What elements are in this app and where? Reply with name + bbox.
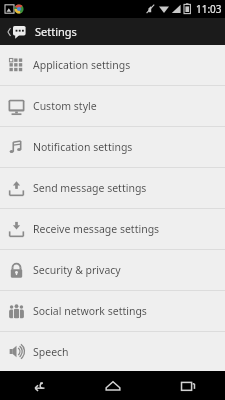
staticText: Custom style <box>33 99 97 113</box>
staticText: Application settings <box>33 58 131 72</box>
button[interactable]: Custom style <box>0 86 225 127</box>
button[interactable]: Home <box>75 371 150 400</box>
button[interactable]: Up, Settings <box>0 18 225 45</box>
button[interactable]: Speech <box>0 332 225 371</box>
staticText: Settings <box>35 24 77 39</box>
staticText: Social network settings <box>33 304 147 318</box>
button[interactable]: Application settings <box>0 45 225 86</box>
button[interactable]: Security & privacy <box>0 250 225 291</box>
button[interactable]: Back <box>0 371 75 400</box>
staticText: 11:03 <box>196 2 222 16</box>
button[interactable]: Recent apps <box>150 371 225 400</box>
button[interactable]: Notification settings <box>0 127 225 168</box>
staticText: Receive message settings <box>33 222 160 236</box>
staticText: Send message settings <box>33 181 147 195</box>
button[interactable]: Send message settings <box>0 168 225 209</box>
staticText: Speech <box>33 345 69 359</box>
staticText: Security & privacy <box>33 263 121 277</box>
staticText: Notification settings <box>33 140 133 154</box>
button[interactable]: Social network settings <box>0 291 225 332</box>
button[interactable]: Receive message settings <box>0 209 225 250</box>
